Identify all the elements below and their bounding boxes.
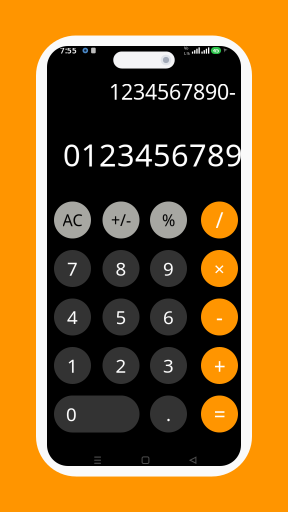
staticText: 0 (66, 402, 77, 426)
staticText: 1234567890- (109, 77, 236, 106)
staticText: 8 (115, 256, 126, 281)
staticText: 7 (67, 256, 78, 281)
button[interactable]: Home (125, 450, 165, 470)
staticText: LTE (184, 50, 190, 56)
button[interactable]: Recent apps (78, 450, 118, 470)
button[interactable]: 3 (150, 347, 187, 384)
button[interactable]: × (201, 250, 238, 287)
button[interactable]: 5 (102, 298, 139, 335)
staticText: 45 (213, 47, 219, 54)
button[interactable]: + (201, 347, 238, 384)
button[interactable]: . (150, 395, 187, 432)
button[interactable]: / (201, 201, 238, 238)
button[interactable]: +/- (102, 201, 139, 238)
staticText: 0123456789 (63, 134, 243, 175)
staticText: AC (62, 209, 82, 231)
staticText: 3 (163, 353, 174, 378)
staticText: 9 (163, 256, 174, 281)
staticText: + (213, 351, 225, 380)
staticText: +/- (111, 209, 131, 231)
staticText: 2 (115, 353, 126, 378)
button[interactable]: 8 (102, 250, 139, 287)
staticText: - (216, 303, 223, 331)
button[interactable]: 2 (102, 347, 139, 384)
button[interactable]: Back (173, 450, 213, 470)
button[interactable]: 0 (54, 395, 139, 432)
staticText: / (215, 206, 223, 234)
staticText: × (214, 256, 225, 281)
button[interactable]: 1 (54, 347, 91, 384)
button[interactable]: 4 (54, 298, 91, 335)
staticText: 4 (67, 305, 78, 329)
staticText: 5 (115, 305, 126, 329)
button[interactable]: % (150, 201, 187, 238)
button[interactable]: 9 (150, 250, 187, 287)
staticText: 7:55 (60, 45, 77, 56)
staticText: = (213, 400, 225, 428)
staticText: 6 (163, 305, 174, 329)
staticText: % (162, 209, 175, 231)
staticText: Vo (184, 45, 188, 50)
staticText: 1 (67, 353, 78, 378)
button[interactable]: = (201, 395, 238, 432)
staticText: . (166, 402, 171, 426)
button[interactable]: 6 (150, 298, 187, 335)
button[interactable]: - (201, 298, 238, 335)
button[interactable]: 7 (54, 250, 91, 287)
button[interactable]: AC (54, 201, 91, 238)
